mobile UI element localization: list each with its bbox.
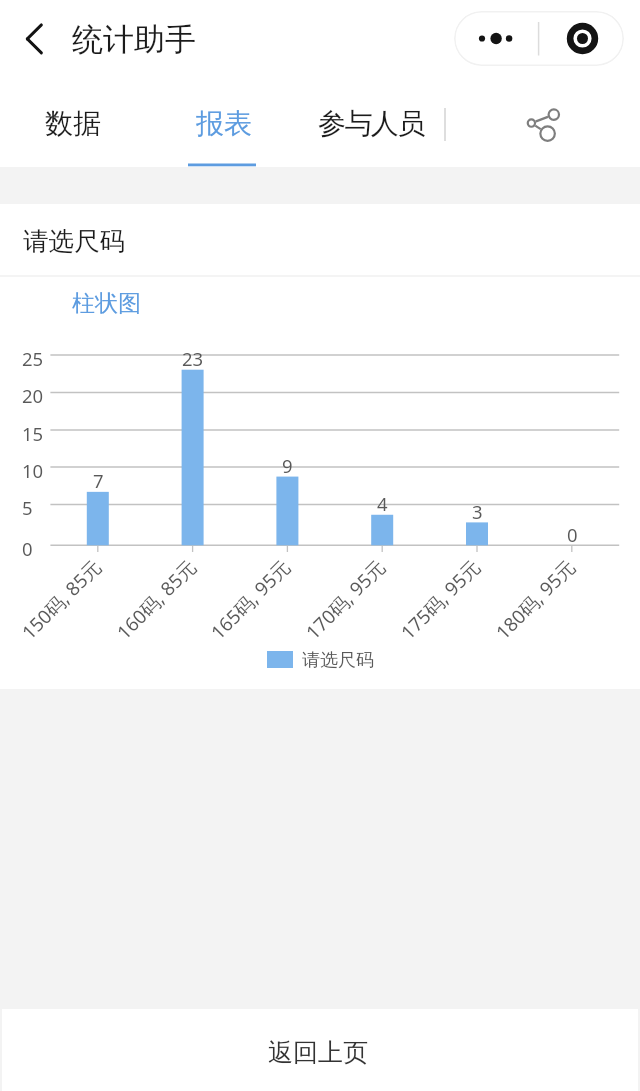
staticText: 报表 xyxy=(196,106,252,141)
button[interactable]: More options and close xyxy=(454,11,624,66)
staticText: 5 xyxy=(22,495,33,520)
staticText: 165码, 95元 xyxy=(205,554,296,645)
staticText: 175码, 95元 xyxy=(395,554,486,645)
button[interactable]: 返回上页 xyxy=(2,1009,638,1091)
staticText: 请选尺码 xyxy=(23,225,125,257)
button[interactable]: 参与人员 xyxy=(306,88,436,167)
staticText: 10 xyxy=(22,458,44,483)
staticText: 参与人员 xyxy=(318,106,424,141)
staticText: 15 xyxy=(22,421,44,446)
button[interactable]: 报表 xyxy=(174,88,274,167)
staticText: 170码, 95元 xyxy=(300,554,391,645)
staticText: 0 xyxy=(22,536,33,561)
staticText: 150码, 85元 xyxy=(16,554,107,645)
staticText: 返回上页 xyxy=(268,1037,368,1068)
button[interactable]: 数据 xyxy=(23,88,123,167)
staticText: 180码, 95元 xyxy=(490,554,581,645)
staticText: 20 xyxy=(22,383,44,408)
staticText: 25 xyxy=(22,346,44,371)
button[interactable]: 柱状图 xyxy=(72,289,141,318)
staticText: 23 xyxy=(182,346,204,371)
staticText: 柱状图 xyxy=(72,289,141,318)
staticText: 9 xyxy=(282,453,293,478)
staticText: 4 xyxy=(377,491,388,516)
staticText: 3 xyxy=(472,499,483,524)
staticText: 7 xyxy=(93,468,104,493)
staticText: 数据 xyxy=(45,106,101,141)
staticText: 统计助手 xyxy=(72,20,196,59)
staticText: 160码, 85元 xyxy=(111,554,202,645)
staticText: 0 xyxy=(567,522,578,547)
button[interactable]: Back xyxy=(10,8,64,62)
button[interactable]: Share xyxy=(515,95,573,153)
staticText: 请选尺码 xyxy=(302,649,374,672)
